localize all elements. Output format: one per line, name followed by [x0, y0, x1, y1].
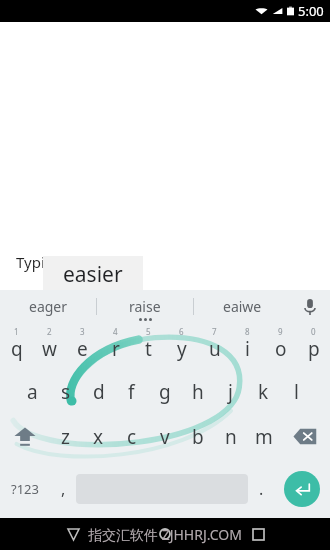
button[interactable]: Shift [0, 414, 49, 459]
button[interactable]: 9 [264, 323, 297, 369]
staticText: 3 [80, 326, 85, 337]
staticText: j [228, 379, 233, 405]
staticText: o [275, 336, 287, 362]
staticText: l [294, 379, 299, 405]
button[interactable]: a [16, 369, 49, 414]
staticText: 9 [278, 326, 283, 337]
staticText: 指交汇软件 ZJHHRJ.COM [88, 525, 242, 544]
button[interactable]: 2 [33, 323, 66, 369]
staticText: 2 [47, 326, 52, 337]
staticText: v [160, 424, 170, 450]
button[interactable]: 6 [165, 323, 198, 369]
button[interactable]: c [115, 414, 148, 459]
staticText: 5 [146, 326, 151, 337]
staticText: d [93, 379, 105, 405]
staticText: raise [129, 297, 161, 316]
button[interactable]: x [82, 414, 115, 459]
staticText: . [259, 478, 264, 500]
staticText: i [245, 336, 250, 362]
staticText: k [258, 379, 269, 405]
button[interactable]: Home [145, 518, 185, 550]
button[interactable]: Voice input [290, 290, 330, 323]
staticText: z [61, 424, 70, 450]
button[interactable]: g [148, 369, 181, 414]
staticText: eaiwe [223, 297, 262, 316]
button[interactable]: Recents [238, 518, 278, 550]
staticText: g [159, 379, 171, 405]
staticText: y [177, 336, 187, 362]
staticText: 0 [311, 326, 316, 337]
button[interactable]: m [247, 414, 280, 459]
staticText: h [192, 379, 204, 405]
staticText: b [192, 424, 204, 450]
staticText: 8 [245, 326, 250, 337]
button[interactable]: 5 [132, 323, 165, 369]
staticText: 7 [212, 326, 217, 337]
staticText: u [209, 336, 221, 362]
button[interactable]: ?123 [0, 459, 50, 518]
button[interactable]: 3 [66, 323, 99, 369]
button[interactable]: 7 [198, 323, 231, 369]
staticText: 4 [113, 326, 118, 337]
button[interactable]: h [181, 369, 214, 414]
button[interactable]: eaiwe [194, 290, 290, 323]
staticText: q [11, 336, 23, 362]
staticText: f [128, 379, 135, 405]
button[interactable]: b [181, 414, 214, 459]
button[interactable]: j [214, 369, 247, 414]
staticText: p [308, 336, 320, 362]
staticText: w [42, 336, 57, 362]
button[interactable]: f [115, 369, 148, 414]
button[interactable]: . [248, 459, 274, 518]
staticText: eager [29, 297, 68, 316]
button[interactable]: eager [0, 290, 96, 323]
button[interactable]: Back [53, 518, 93, 550]
staticText: s [61, 379, 71, 405]
staticText: r [112, 336, 120, 362]
staticText: 1 [14, 326, 19, 337]
button[interactable]: v [148, 414, 181, 459]
staticText: t [145, 336, 152, 362]
staticText: m [255, 424, 273, 450]
staticText: a [27, 379, 38, 405]
staticText: 5:00 [298, 2, 324, 20]
staticText: c [127, 424, 137, 450]
staticText: Typing is [16, 252, 79, 272]
button[interactable]: s [49, 369, 82, 414]
staticText: ?123 [11, 480, 39, 498]
button[interactable]: , [50, 459, 76, 518]
button[interactable]: raise [97, 290, 193, 323]
button[interactable]: 0 [297, 323, 330, 369]
button[interactable]: k [247, 369, 280, 414]
button[interactable]: Backspace [280, 414, 330, 459]
staticText: , [61, 478, 66, 500]
staticText: x [93, 424, 104, 450]
button[interactable]: z [49, 414, 82, 459]
button[interactable]: d [82, 369, 115, 414]
button[interactable]: 4 [99, 323, 132, 369]
staticText: e [77, 336, 88, 362]
staticText: n [225, 424, 237, 450]
button[interactable]: Enter [284, 471, 320, 507]
staticText: 6 [179, 326, 184, 337]
staticText: easier [63, 260, 123, 289]
button[interactable]: 8 [231, 323, 264, 369]
button[interactable]: n [214, 414, 247, 459]
button[interactable]: 1 [0, 323, 33, 369]
button[interactable]: l [280, 369, 313, 414]
